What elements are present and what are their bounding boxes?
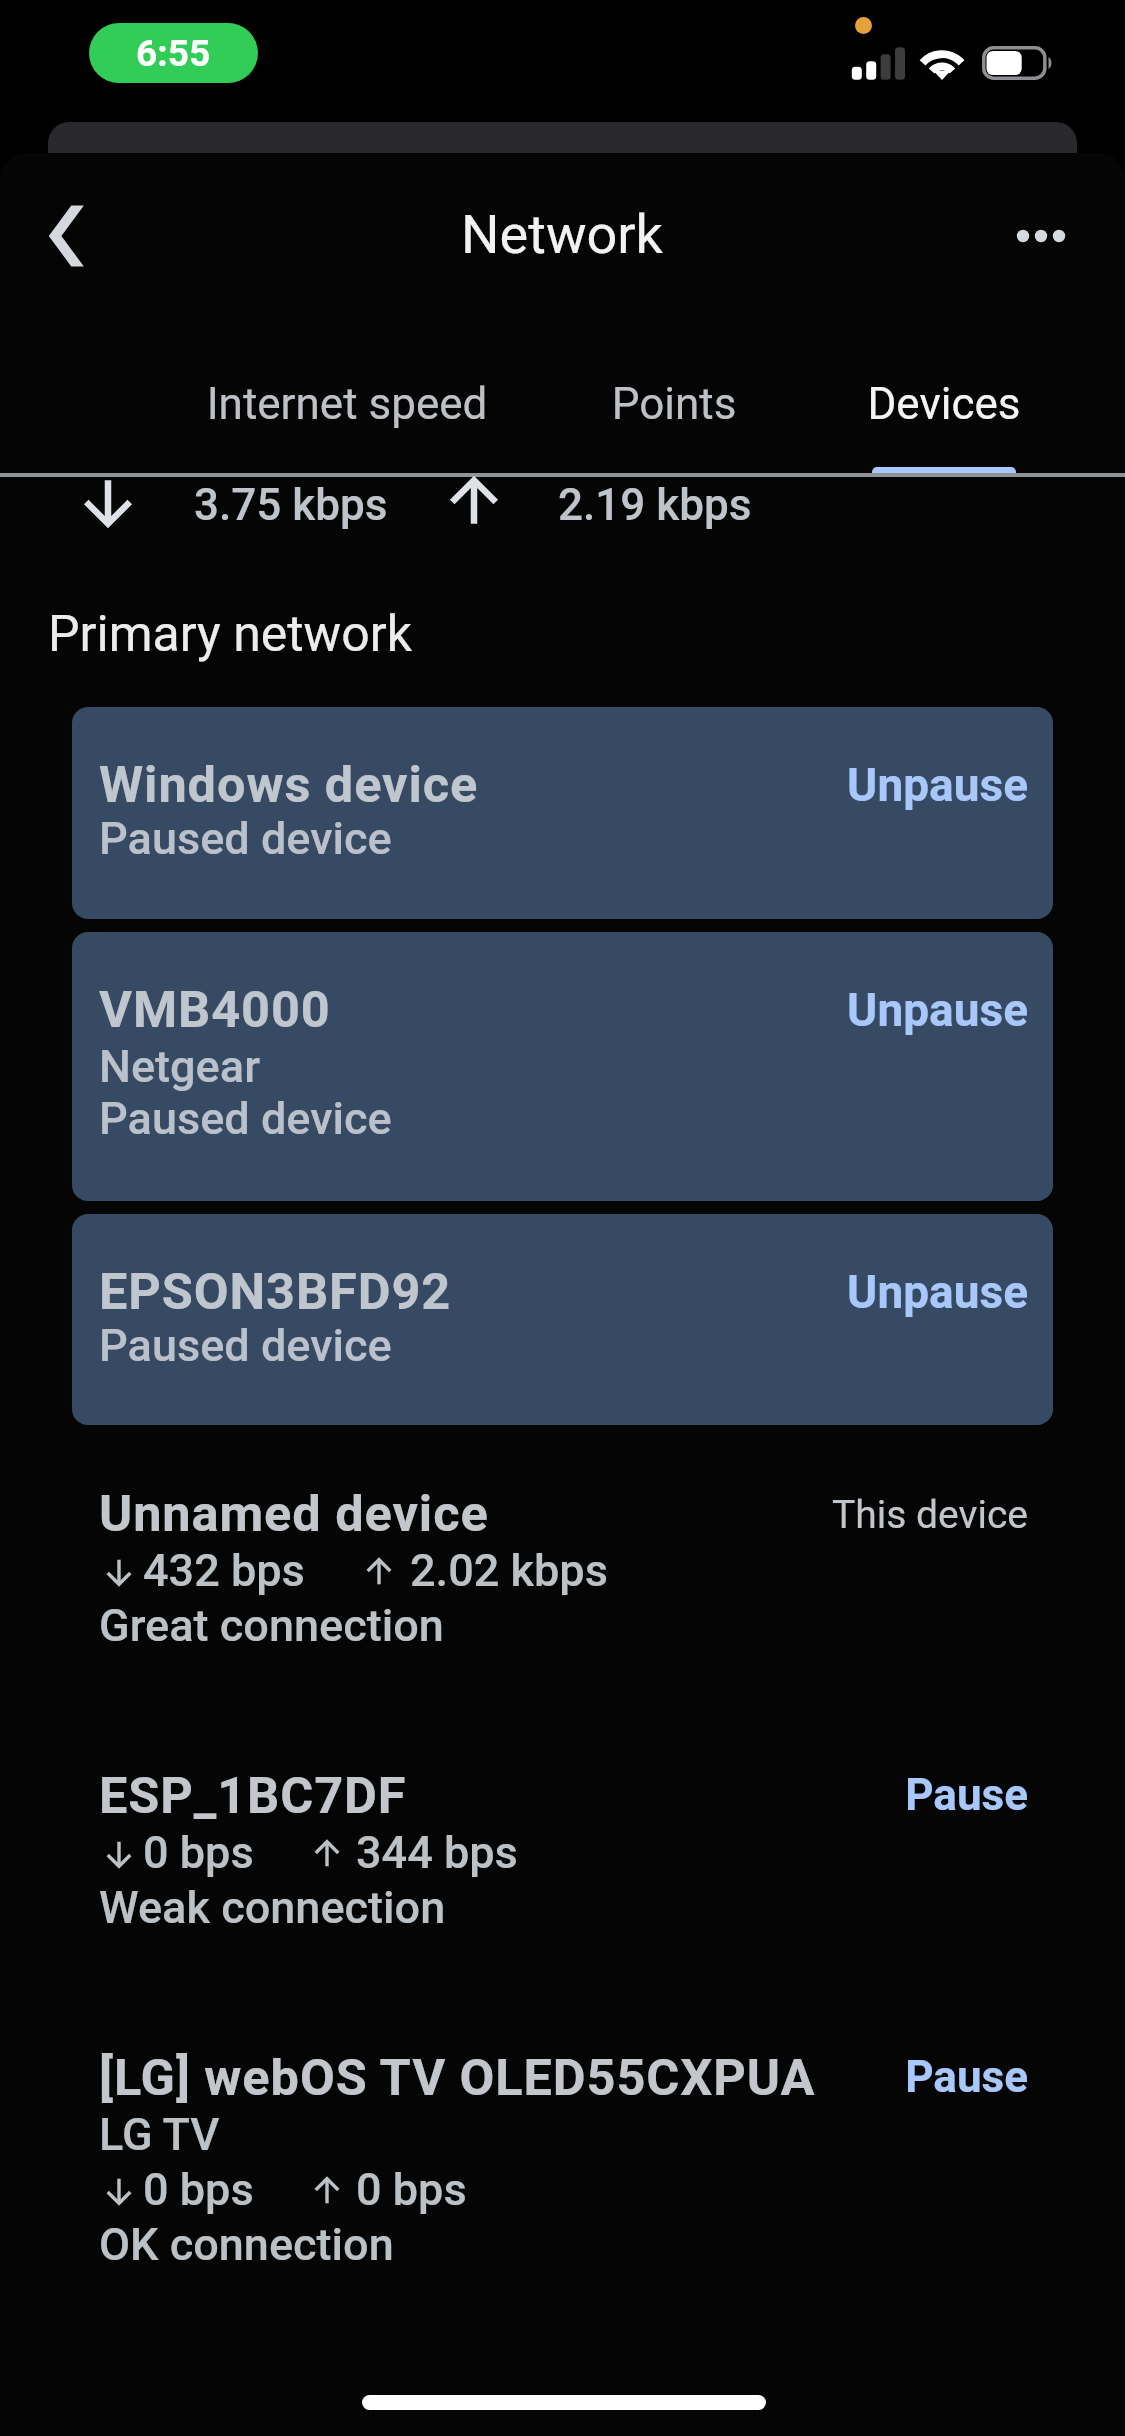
staticText: Great connection — [99, 1599, 444, 1652]
staticText: Paused device — [99, 1319, 392, 1372]
staticText: Weak connection — [99, 1881, 446, 1934]
button[interactable] — [72, 707, 1053, 919]
staticText: 0 bps — [143, 1826, 254, 1879]
staticText: Unnamed device — [99, 1484, 489, 1543]
staticText: LG TV — [99, 2108, 220, 2161]
staticText: 432 bps — [143, 1544, 305, 1597]
staticText: Netgear — [99, 1040, 260, 1093]
button[interactable]: Active call — [89, 23, 258, 83]
staticText: ESP_1BC7DF — [99, 1766, 407, 1825]
staticText: Paused device — [99, 812, 392, 865]
button[interactable] — [556, 320, 792, 475]
staticText: This device — [628, 1492, 1028, 1538]
staticText: EPSON3BFD92 — [99, 1262, 452, 1321]
staticText: Unpause — [628, 983, 1028, 1037]
button[interactable] — [0, 1763, 1125, 1940]
staticText: Network — [212, 203, 912, 266]
staticText: OK connection — [99, 2218, 394, 2271]
staticText: VMB4000 — [99, 980, 331, 1039]
staticText: Windows device — [99, 755, 479, 814]
staticText: Devices — [744, 378, 1125, 430]
button[interactable] — [0, 1481, 1125, 1658]
staticText: 6:55 — [136, 32, 211, 75]
button[interactable]: More options — [985, 180, 1097, 292]
staticText: Unpause — [628, 1265, 1028, 1319]
staticText: 344 bps — [356, 1826, 518, 1879]
button[interactable] — [72, 932, 1053, 1201]
staticText: Unpause — [628, 758, 1028, 812]
staticText: Paused device — [99, 1092, 392, 1145]
staticText: Internet speed — [97, 378, 597, 430]
button[interactable] — [160, 320, 536, 475]
staticText: 2.19 kbps — [558, 479, 752, 531]
staticText: 2.02 kbps — [410, 1544, 608, 1597]
staticText: Pause — [628, 1769, 1028, 1821]
button[interactable] — [0, 2045, 1125, 2277]
staticText: [LG] webOS TV OLED55CXPUA — [99, 2048, 816, 2107]
staticText: Pause — [628, 2051, 1028, 2103]
staticText: Points — [474, 378, 874, 430]
button[interactable]: Back — [10, 180, 122, 292]
staticText: 0 bps — [356, 2163, 467, 2216]
staticText: 0 bps — [143, 2163, 254, 2216]
staticText: Primary network — [48, 605, 412, 664]
button[interactable] — [72, 1214, 1053, 1425]
staticText: 3.75 kbps — [194, 479, 388, 531]
button[interactable] — [820, 320, 1068, 475]
